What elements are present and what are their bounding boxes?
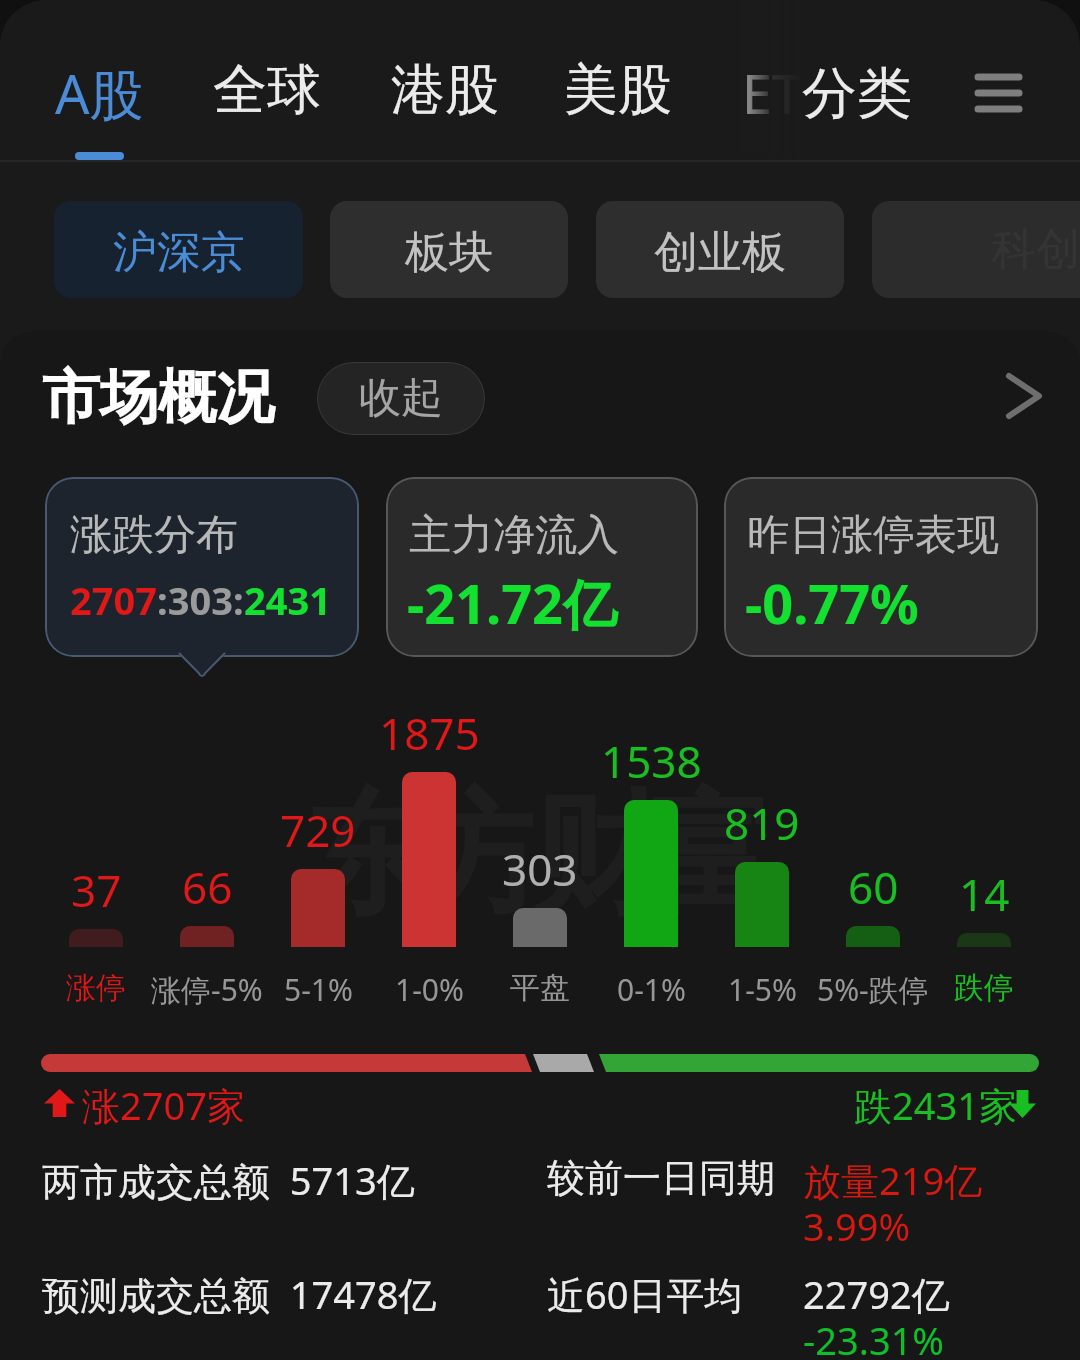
staticText: 美股 <box>564 56 672 124</box>
staticText: -23.31% <box>803 1314 944 1360</box>
staticText: 5-1% <box>284 969 353 1010</box>
button[interactable]: 创业板 <box>596 201 844 298</box>
staticText: 66 <box>182 857 233 917</box>
staticText: 市场概况 <box>42 361 274 434</box>
staticText: 涨2707家 <box>82 1079 245 1131</box>
button[interactable]: 分类 <box>802 59 912 128</box>
staticText: 板块 <box>405 225 493 280</box>
staticText: 37 <box>71 860 122 920</box>
staticText: 819 <box>724 793 800 853</box>
button[interactable]: 昨日涨停表现 <box>724 477 1038 657</box>
staticText: 财 <box>533 773 648 939</box>
staticText: 1-0% <box>395 969 464 1010</box>
button[interactable]: 板块 <box>330 201 568 298</box>
staticText: 富 <box>648 773 763 939</box>
staticText: 1875 <box>379 703 480 763</box>
staticText: 主力净流入 <box>409 509 619 562</box>
other: Down <box>1009 1090 1036 1118</box>
staticText: 全球 <box>213 56 321 124</box>
button[interactable]: 沪深京 <box>54 201 303 298</box>
staticText: 创业板 <box>654 225 786 280</box>
button[interactable]: A股 <box>55 56 144 130</box>
staticText: 303 <box>502 839 578 899</box>
button[interactable]: 市场概况 <box>42 361 274 434</box>
button[interactable]: 港股 <box>391 56 499 124</box>
staticText: 预测成交总额 17478亿 <box>42 1268 437 1320</box>
staticText: A股 <box>55 56 144 130</box>
staticText: 涨跌分布 <box>70 509 238 562</box>
staticText: 跌2431家 <box>854 1079 1017 1131</box>
button[interactable]: 收起 <box>317 362 485 435</box>
staticText: 科创板 <box>992 222 1080 277</box>
staticText: 729 <box>280 800 356 860</box>
staticText: 60 <box>848 857 899 917</box>
staticText: 2707 <box>70 574 157 626</box>
staticText: 昨日涨停表现 <box>747 509 999 562</box>
staticText: 较前一日同期 <box>547 1154 775 1202</box>
staticText: 14 <box>959 864 1010 924</box>
staticText: 跌停 <box>954 969 1014 1007</box>
staticText: ETF <box>742 56 831 130</box>
staticText: 22792亿 <box>803 1268 950 1320</box>
staticText: 平盘 <box>510 969 570 1007</box>
staticText: -21.72亿 <box>407 566 618 640</box>
staticText: 涨停-5% <box>151 969 263 1010</box>
button[interactable]: 涨跌分布 <box>45 477 359 657</box>
staticText: 近60日平均 <box>547 1268 743 1320</box>
button[interactable]: Menu <box>960 48 1036 124</box>
button[interactable]: More <box>990 359 1056 439</box>
staticText: 3.99% <box>803 1200 910 1252</box>
staticText: 5%-跌停 <box>817 969 929 1010</box>
staticText: 两市成交总额 5713亿 <box>42 1154 415 1206</box>
button[interactable]: 美股 <box>564 56 672 124</box>
staticText: 方 <box>418 773 533 939</box>
staticText: 沪深京 <box>113 225 245 280</box>
staticText: 1-5% <box>728 969 797 1010</box>
staticText: 东 <box>303 773 418 939</box>
staticText: 涨停 <box>66 969 126 1007</box>
button[interactable]: ETF <box>742 56 831 130</box>
staticText: 分类 <box>802 59 912 128</box>
staticText: 1538 <box>601 731 702 791</box>
staticText: 收起 <box>359 372 443 425</box>
other: Up <box>44 1089 75 1117</box>
staticText: -0.77% <box>745 566 919 640</box>
staticText: 0-1% <box>617 969 686 1010</box>
staticText: 放量219亿 <box>803 1154 983 1206</box>
staticText: 港股 <box>391 56 499 124</box>
staticText: :303: <box>157 574 244 626</box>
button[interactable]: 全球 <box>213 56 321 124</box>
staticText: 2431 <box>244 574 331 626</box>
button[interactable]: 主力净流入 <box>386 477 698 657</box>
